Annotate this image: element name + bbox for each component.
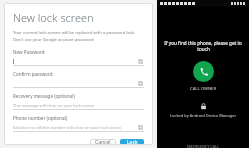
button[interactable]: Call owner <box>193 61 214 82</box>
staticText: This message will show on your lock scre… <box>13 103 95 108</box>
staticText: Lock <box>127 139 138 145</box>
button[interactable]: Lock <box>120 139 144 145</box>
button[interactable]: Field action <box>137 80 144 87</box>
staticText: Locked by Android Device Manager <box>170 113 237 118</box>
button[interactable]: A button to call this number will show o… <box>13 123 144 131</box>
staticText: Your current lock screen will be replace… <box>13 30 136 36</box>
staticText: If you find this phone, please get in <box>164 40 242 46</box>
button[interactable]: Cancel <box>90 139 116 145</box>
staticText: New lock screen <box>13 10 94 25</box>
staticText: Confirm password <box>13 71 53 77</box>
staticText: Don't use your Google account password <box>13 37 94 43</box>
button[interactable]: EMERGENCY CALL <box>187 144 220 148</box>
staticText: A button to call this number will show o… <box>13 125 122 130</box>
button[interactable]: Field action <box>13 57 144 65</box>
button[interactable]: This message will show on your lock scre… <box>13 101 144 109</box>
staticText: Recovery message (optional) <box>13 93 75 99</box>
staticText: Cancel <box>95 139 111 145</box>
button[interactable]: Field action <box>137 58 144 65</box>
staticText: touch <box>197 46 210 52</box>
staticText: CALL OWNER <box>190 86 217 92</box>
button[interactable]: Field action <box>13 79 144 87</box>
staticText: New Password <box>13 49 45 55</box>
staticText: Phone number (optional) <box>13 115 68 121</box>
button[interactable]: Field action <box>137 124 144 131</box>
